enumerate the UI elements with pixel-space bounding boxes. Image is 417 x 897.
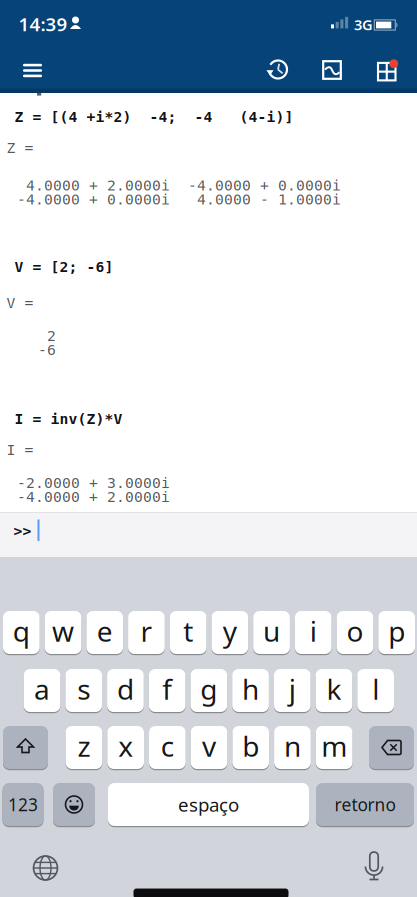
staticText: I = inv(Z)*V: [14, 411, 122, 427]
staticText: I =: [6, 442, 33, 458]
staticText: m: [321, 727, 347, 765]
staticText: 14:39: [18, 12, 67, 36]
staticText: Z =: [6, 140, 33, 156]
button[interactable]: r: [128, 610, 165, 655]
staticText: 123: [8, 793, 38, 816]
button[interactable]: m: [316, 725, 352, 770]
staticText: retorno: [334, 793, 395, 816]
button[interactable]: h: [232, 668, 269, 713]
staticText: V = [2; -6]: [14, 259, 113, 275]
staticText: z: [77, 727, 90, 765]
staticText: q: [13, 612, 30, 650]
button[interactable]: a: [24, 668, 60, 713]
staticText: -4.0000 + 2.0000i: [17, 489, 170, 505]
button[interactable]: retorno: [316, 782, 414, 827]
button[interactable]: b: [232, 725, 269, 770]
staticText: w: [52, 612, 74, 650]
button[interactable]: Dictate: [363, 851, 385, 881]
button[interactable]: j: [274, 668, 311, 713]
button[interactable]: Menu: [12, 50, 52, 90]
button[interactable]: l: [357, 668, 394, 713]
staticText: e: [97, 612, 113, 650]
button[interactable]: Figures: [312, 50, 352, 90]
staticText: c: [161, 727, 174, 765]
staticText: f: [162, 670, 172, 708]
staticText: b: [242, 727, 259, 765]
staticText: g: [200, 670, 217, 708]
staticText: j: [289, 670, 296, 708]
staticText: u: [263, 612, 280, 650]
staticText: o: [346, 612, 363, 650]
button[interactable]: Shift: [3, 725, 48, 770]
button[interactable]: n: [274, 725, 311, 770]
button[interactable]: c: [149, 725, 186, 770]
staticText: -2.0000 + 3.0000i: [17, 475, 170, 491]
staticText: a: [34, 670, 50, 708]
staticText: 3G: [354, 15, 373, 34]
staticText: espaço: [178, 792, 239, 817]
button[interactable]: espaço: [108, 782, 309, 827]
staticText: >>: [13, 523, 31, 539]
button[interactable]: Next keyboard: [31, 854, 59, 882]
button[interactable]: i: [295, 610, 332, 655]
staticText: -4.0000 + 0.0000i 4.0000 - 1.0000i: [17, 191, 341, 208]
staticText: 2: [47, 328, 56, 344]
button[interactable]: d: [107, 668, 144, 713]
staticText: Z = [(4 +i*2) -4; -4 (4-i)]: [14, 109, 293, 125]
staticText: -6: [38, 342, 56, 358]
button[interactable]: s: [65, 668, 102, 713]
staticText: V =: [6, 295, 33, 311]
staticText: k: [326, 670, 341, 708]
staticText: 4.0000 + 2.0000i -4.0000 + 0.0000i: [26, 177, 341, 194]
button[interactable]: Numbers: [2, 782, 43, 827]
button[interactable]: q: [3, 610, 40, 655]
button[interactable]: v: [191, 725, 227, 770]
staticText: y: [223, 612, 237, 650]
button[interactable]: o: [337, 610, 373, 655]
staticText: x: [118, 727, 133, 765]
staticText: i: [310, 612, 317, 650]
button[interactable]: t: [170, 610, 206, 655]
staticText: l: [372, 670, 379, 708]
button[interactable]: f: [149, 668, 185, 713]
button[interactable]: w: [45, 610, 81, 655]
button[interactable]: k: [316, 668, 352, 713]
staticText: h: [242, 670, 259, 708]
staticText: v: [202, 727, 216, 765]
button[interactable]: g: [190, 668, 227, 713]
button[interactable]: x: [107, 725, 144, 770]
staticText: r: [140, 612, 152, 650]
button[interactable]: Delete: [369, 725, 414, 770]
button[interactable]: History: [258, 49, 298, 89]
staticText: t: [183, 612, 193, 650]
button[interactable]: p: [378, 610, 415, 655]
button[interactable]: z: [66, 725, 102, 770]
staticText: p: [388, 612, 405, 650]
button[interactable]: e: [86, 610, 123, 655]
staticText: d: [117, 670, 134, 708]
button[interactable]: u: [253, 610, 290, 655]
button[interactable]: Workspace: [368, 51, 408, 91]
button[interactable]: Emoji: [53, 782, 95, 827]
button[interactable]: y: [211, 610, 248, 655]
staticText: s: [77, 670, 90, 708]
staticText: n: [284, 727, 301, 765]
